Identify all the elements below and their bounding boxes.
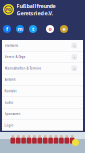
- staticText: Startseite: [4, 43, 18, 47]
- staticText: +: [73, 54, 75, 60]
- staticText: Geretsried e.V.: [16, 9, 52, 17]
- staticText: +: [73, 66, 75, 71]
- staticText: f: [6, 25, 8, 33]
- staticText: Verein & Orga: [4, 55, 25, 59]
- button[interactable]: E-Mail: [60, 25, 68, 33]
- button[interactable]: Verein & Orga: [2, 51, 83, 62]
- button[interactable]: Kontakt: [2, 86, 83, 97]
- button[interactable]: Sponsoren: [2, 108, 83, 119]
- staticText: Sponsoren: [4, 112, 20, 116]
- staticText: Fußballfreunde: [16, 2, 55, 9]
- button[interactable]: Login: [2, 120, 83, 131]
- staticText: t: [32, 25, 34, 33]
- button[interactable]: Startseite: [2, 40, 83, 51]
- button[interactable]: Messenger: [16, 25, 24, 33]
- staticText: Suche: [4, 100, 13, 104]
- button[interactable]: Facebook: [3, 25, 11, 33]
- staticText: Kontakt: [4, 89, 16, 93]
- button[interactable]: Mannschaften & Termine: [2, 63, 83, 74]
- button[interactable]: Instagram: [46, 25, 54, 33]
- staticText: m: [17, 25, 22, 33]
- button[interactable]: Twitter: [29, 25, 37, 33]
- staticText: Anfahrt: [4, 78, 15, 82]
- staticText: +: [73, 43, 75, 48]
- staticText: Login: [4, 123, 13, 127]
- staticText: e: [62, 25, 65, 33]
- staticText: Mannschaften & Termine: [4, 66, 41, 70]
- button[interactable]: Anfahrt: [2, 74, 83, 85]
- staticText: o: [48, 25, 51, 33]
- button[interactable]: Suche: [2, 97, 83, 108]
- staticText: FG: [6, 7, 11, 12]
